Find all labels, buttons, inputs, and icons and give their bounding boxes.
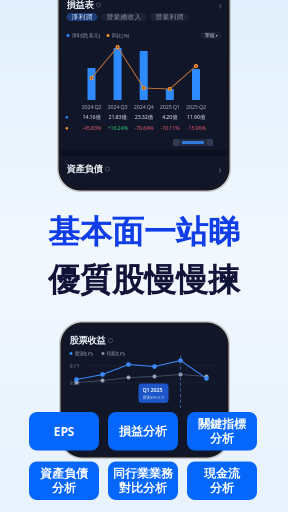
staticText: 2025 Q2: [186, 103, 206, 111]
button[interactable]: 損益表: [66, 0, 221, 10]
staticText: 資產負債: [66, 163, 102, 175]
staticText: 淨利潤: [71, 13, 92, 21]
staticText: 2024 Q4: [134, 103, 154, 111]
staticText: 分析: [52, 481, 76, 495]
staticText: 分析: [210, 481, 234, 495]
staticText: 分析: [210, 431, 234, 446]
staticText: +16.24%: [108, 124, 128, 132]
staticText: ›: [218, 0, 221, 12]
staticText: EPS: [53, 423, 74, 439]
staticText: 損益分析: [119, 424, 167, 439]
staticText: -15.96%: [186, 124, 205, 132]
staticText: 11.90億: [187, 113, 205, 121]
staticText: 同比(%): [111, 32, 129, 39]
staticText: 21.83億: [109, 113, 127, 121]
button[interactable]: EPS: [29, 412, 99, 450]
button[interactable]: 營業總收入: [101, 13, 146, 21]
button[interactable]: 季報: [200, 32, 221, 39]
staticText: 現金流: [204, 466, 240, 481]
staticText: Q1 2025: [142, 386, 162, 394]
staticText: 損益表: [66, 0, 93, 11]
staticText: 實測EPS 0.71: [142, 395, 164, 400]
staticText: ›: [218, 162, 221, 176]
button[interactable]: 同行業業務: [108, 461, 178, 500]
staticText: 實測EPS: [74, 350, 93, 357]
button[interactable]: 淨利潤: [66, 13, 97, 21]
staticText: 0.71: [69, 362, 79, 369]
staticText: -45.83%: [82, 124, 101, 132]
button[interactable]: 關鍵指標: [187, 412, 257, 450]
staticText: ▾: [215, 33, 217, 38]
staticText: 2024 Q2: [81, 103, 101, 111]
staticText: 0.50: [69, 379, 79, 386]
staticText: 關鍵指標: [198, 416, 246, 431]
button[interactable]: 現金流: [187, 461, 257, 500]
staticText: 營業利潤: [155, 13, 183, 21]
button[interactable]: 資產負債: [66, 164, 221, 174]
staticText: 資產負債: [40, 466, 88, 481]
staticText: -70.11%: [160, 124, 179, 132]
staticText: 4.20億: [162, 113, 177, 121]
button[interactable]: 營業利潤: [150, 13, 188, 21]
button[interactable]: 損益分析: [108, 412, 178, 450]
staticText: 23.32億: [135, 113, 153, 121]
staticText: 股票收益: [69, 335, 105, 346]
button[interactable]: 資產負債: [29, 461, 99, 500]
staticText: 營業總收入: [106, 13, 141, 21]
staticText: 優質股慢慢揀: [48, 260, 240, 300]
staticText: -70.64%: [134, 124, 153, 132]
staticText: 對比分析: [119, 481, 167, 495]
staticText: 同行業業務: [113, 466, 173, 481]
staticText: 14.16億: [82, 113, 100, 121]
staticText: 2024 Q3: [108, 103, 128, 111]
staticText: 基本面一站睇: [48, 212, 240, 252]
staticText: 預期EPS: [106, 350, 125, 357]
staticText: 季報: [204, 32, 214, 39]
staticText: 淨利潤(美元): [71, 32, 100, 39]
staticText: 2025 Q1: [160, 103, 180, 111]
